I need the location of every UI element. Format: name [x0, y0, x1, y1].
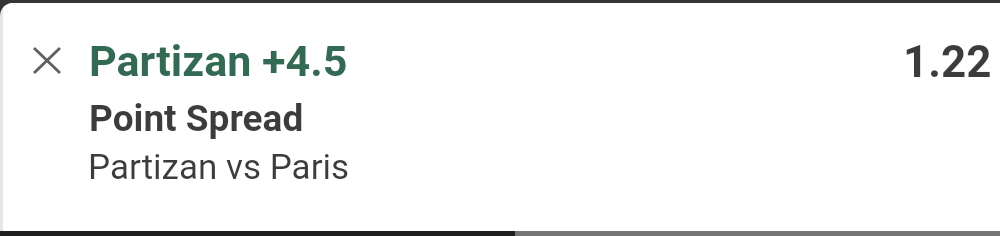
staticText: Point Spread	[89, 97, 304, 140]
staticText: Partizan vs Paris	[88, 147, 350, 188]
staticText: Partizan +4.5	[89, 36, 348, 86]
staticText: 1.22	[903, 36, 992, 88]
button[interactable]: Remove selection	[29, 42, 65, 78]
button[interactable]: Remove selection	[3, 3, 1000, 231]
